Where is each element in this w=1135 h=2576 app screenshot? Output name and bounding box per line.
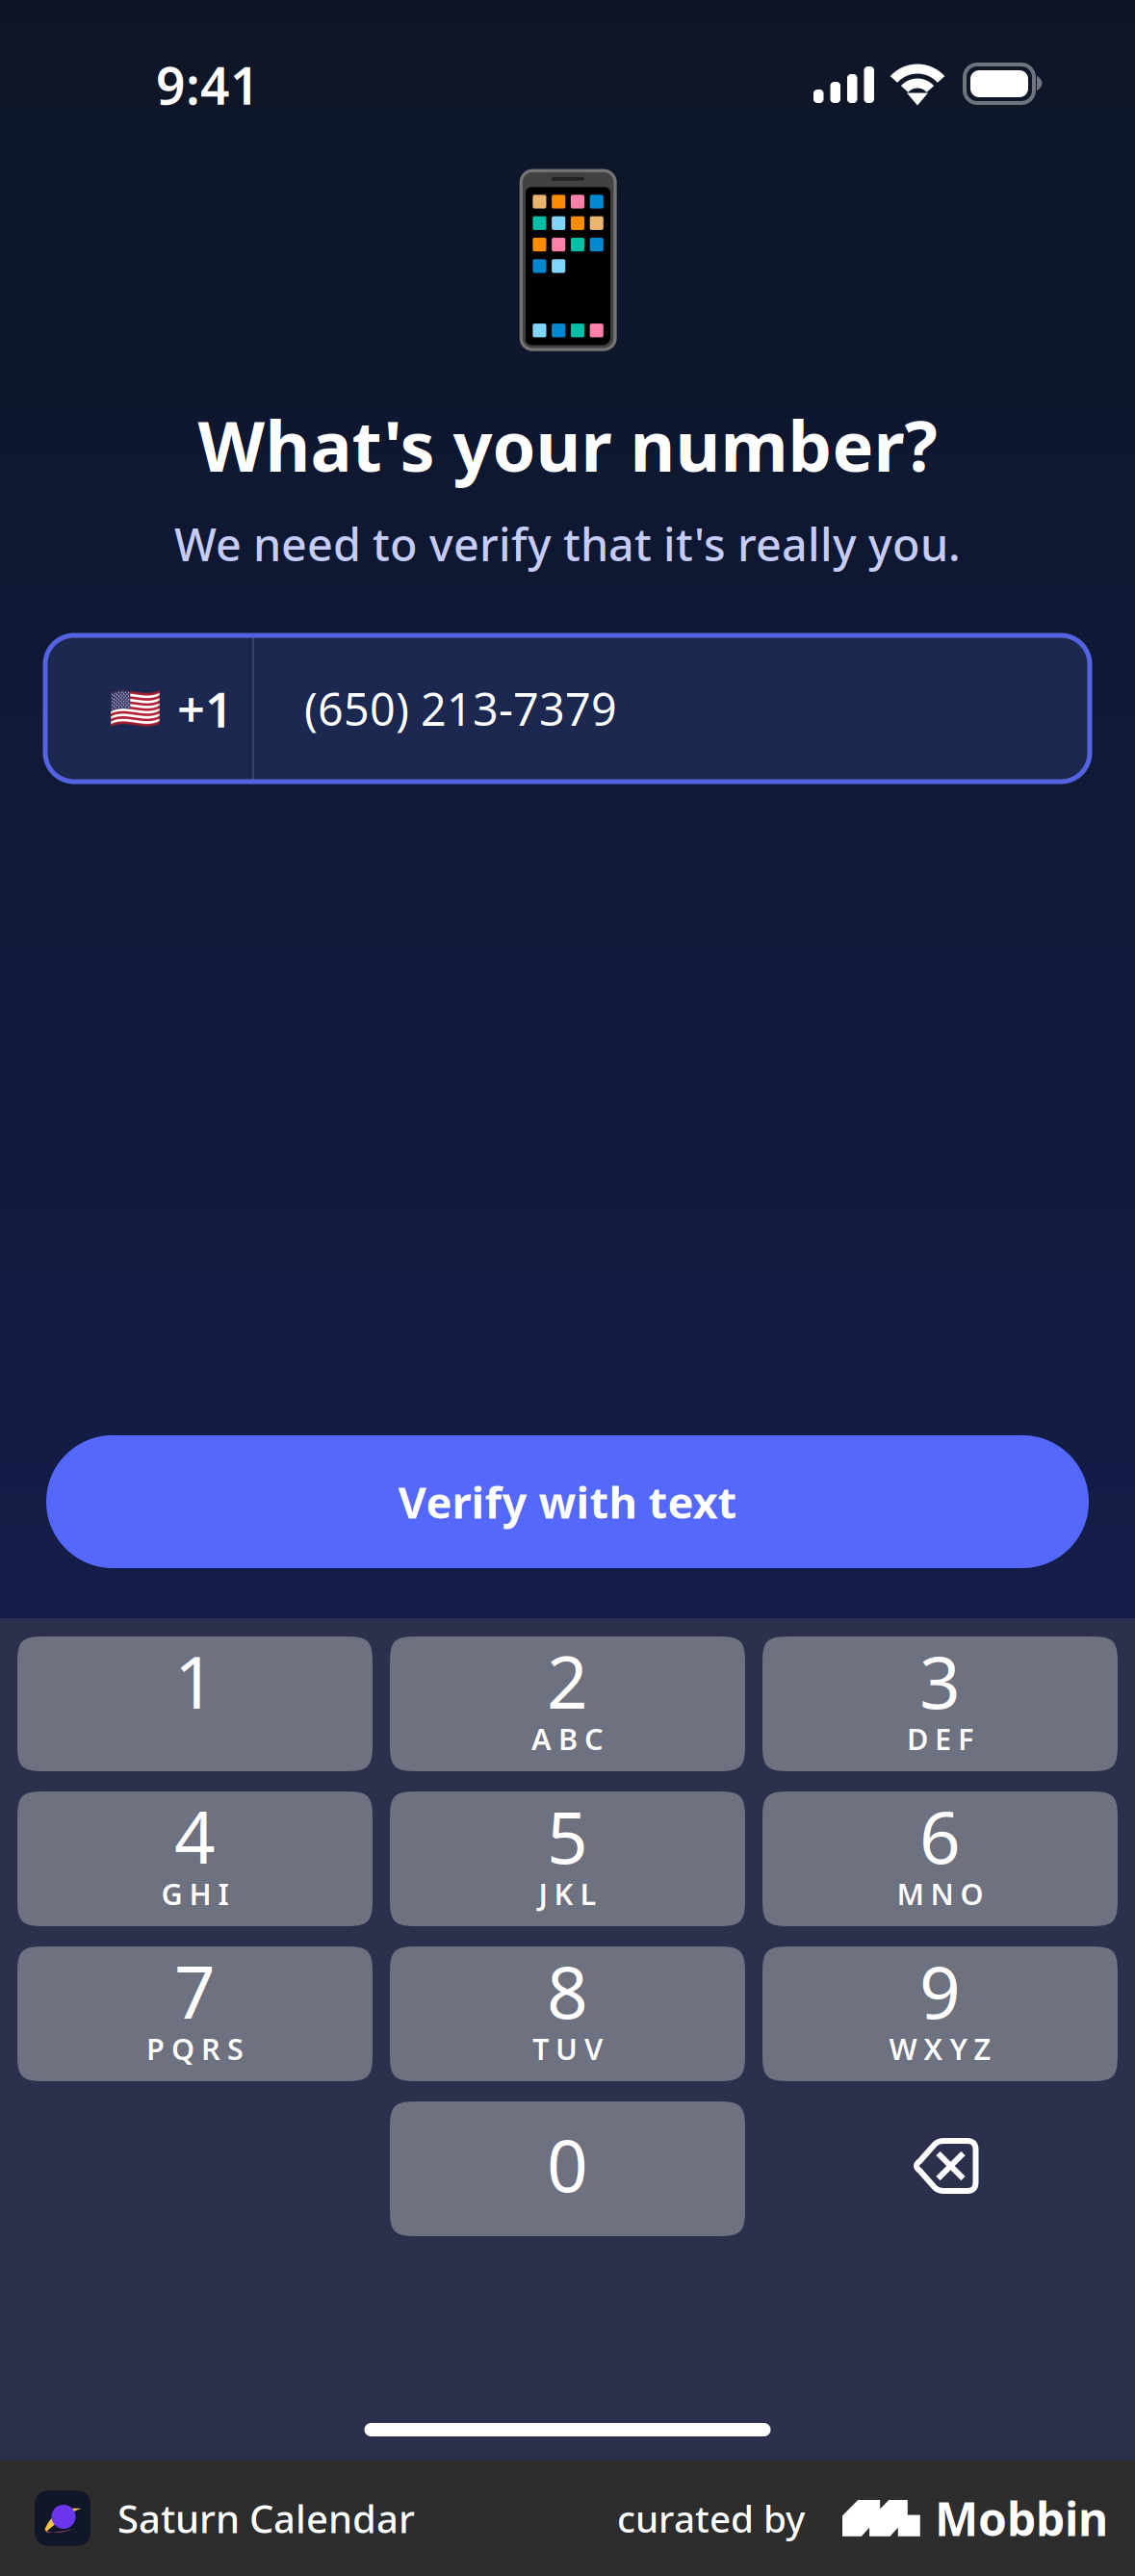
- staticText: 3: [919, 1633, 961, 1728]
- staticText: 9:41: [156, 51, 260, 119]
- staticText: We need to verify that it's really you.: [174, 514, 961, 574]
- staticText: Saturn Calendar: [117, 2493, 415, 2544]
- button[interactable]: Verify with text: [46, 1435, 1089, 1568]
- staticText: 6: [919, 1788, 961, 1883]
- button[interactable]: 7: [17, 1946, 373, 2081]
- button[interactable]: 8: [390, 1946, 745, 2081]
- staticText: 5: [547, 1788, 588, 1883]
- staticText: TUV: [532, 2029, 603, 2068]
- button[interactable]: 5: [390, 1791, 745, 1926]
- staticText: DEF: [907, 1719, 973, 1758]
- staticText: 9: [919, 1943, 961, 2038]
- staticText: PQRS: [146, 2029, 244, 2068]
- staticText: curated by: [617, 2494, 805, 2543]
- button[interactable]: 1: [17, 1636, 373, 1771]
- staticText: 8: [547, 1943, 588, 2038]
- staticText: 📱: [464, 165, 671, 354]
- staticText: +1: [177, 676, 233, 741]
- staticText: 1: [174, 1633, 216, 1728]
- staticText: 4: [174, 1788, 216, 1883]
- button[interactable]: 9: [762, 1946, 1118, 2081]
- staticText: 2: [547, 1633, 588, 1728]
- button[interactable]: 2: [390, 1636, 745, 1771]
- staticText: 🇺🇸: [109, 684, 162, 733]
- button[interactable]: 0: [390, 2101, 745, 2236]
- staticText: (650) 213-7379: [304, 679, 617, 738]
- staticText: WXYZ: [889, 2029, 991, 2068]
- staticText: GHI: [161, 1874, 229, 1913]
- staticText: JKL: [539, 1874, 596, 1913]
- button[interactable]: 3: [762, 1636, 1118, 1771]
- staticText: 0: [547, 2116, 588, 2212]
- button[interactable]: Delete: [762, 2101, 1118, 2236]
- staticText: 7: [174, 1943, 216, 2038]
- button[interactable]: 6: [762, 1791, 1118, 1926]
- staticText: Verify with text: [398, 1473, 737, 1531]
- staticText: ABC: [531, 1719, 604, 1758]
- button[interactable]: 4: [17, 1791, 373, 1926]
- staticText: MNO: [897, 1874, 983, 1913]
- staticText: Mobbin: [935, 2488, 1108, 2549]
- staticText: What's your number?: [198, 399, 937, 491]
